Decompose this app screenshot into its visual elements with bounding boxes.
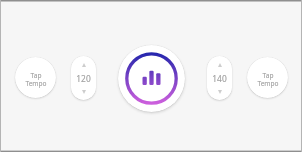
staticText: Tap Tempo — [25, 71, 47, 88]
button[interactable]: Increase tempo — [207, 56, 232, 73]
button[interactable]: Decrease tempo — [71, 83, 96, 100]
button[interactable]: Tap Tempo — [247, 57, 288, 98]
button[interactable]: Increase tempo — [71, 56, 96, 73]
staticText: Tap Tempo — [257, 71, 279, 88]
button[interactable]: Decrease tempo — [207, 83, 232, 100]
button[interactable]: Tap Tempo — [15, 57, 56, 98]
staticText: 120 — [76, 73, 91, 83]
button[interactable]: Start metronome — [118, 45, 185, 112]
staticText: 140 — [212, 73, 227, 83]
